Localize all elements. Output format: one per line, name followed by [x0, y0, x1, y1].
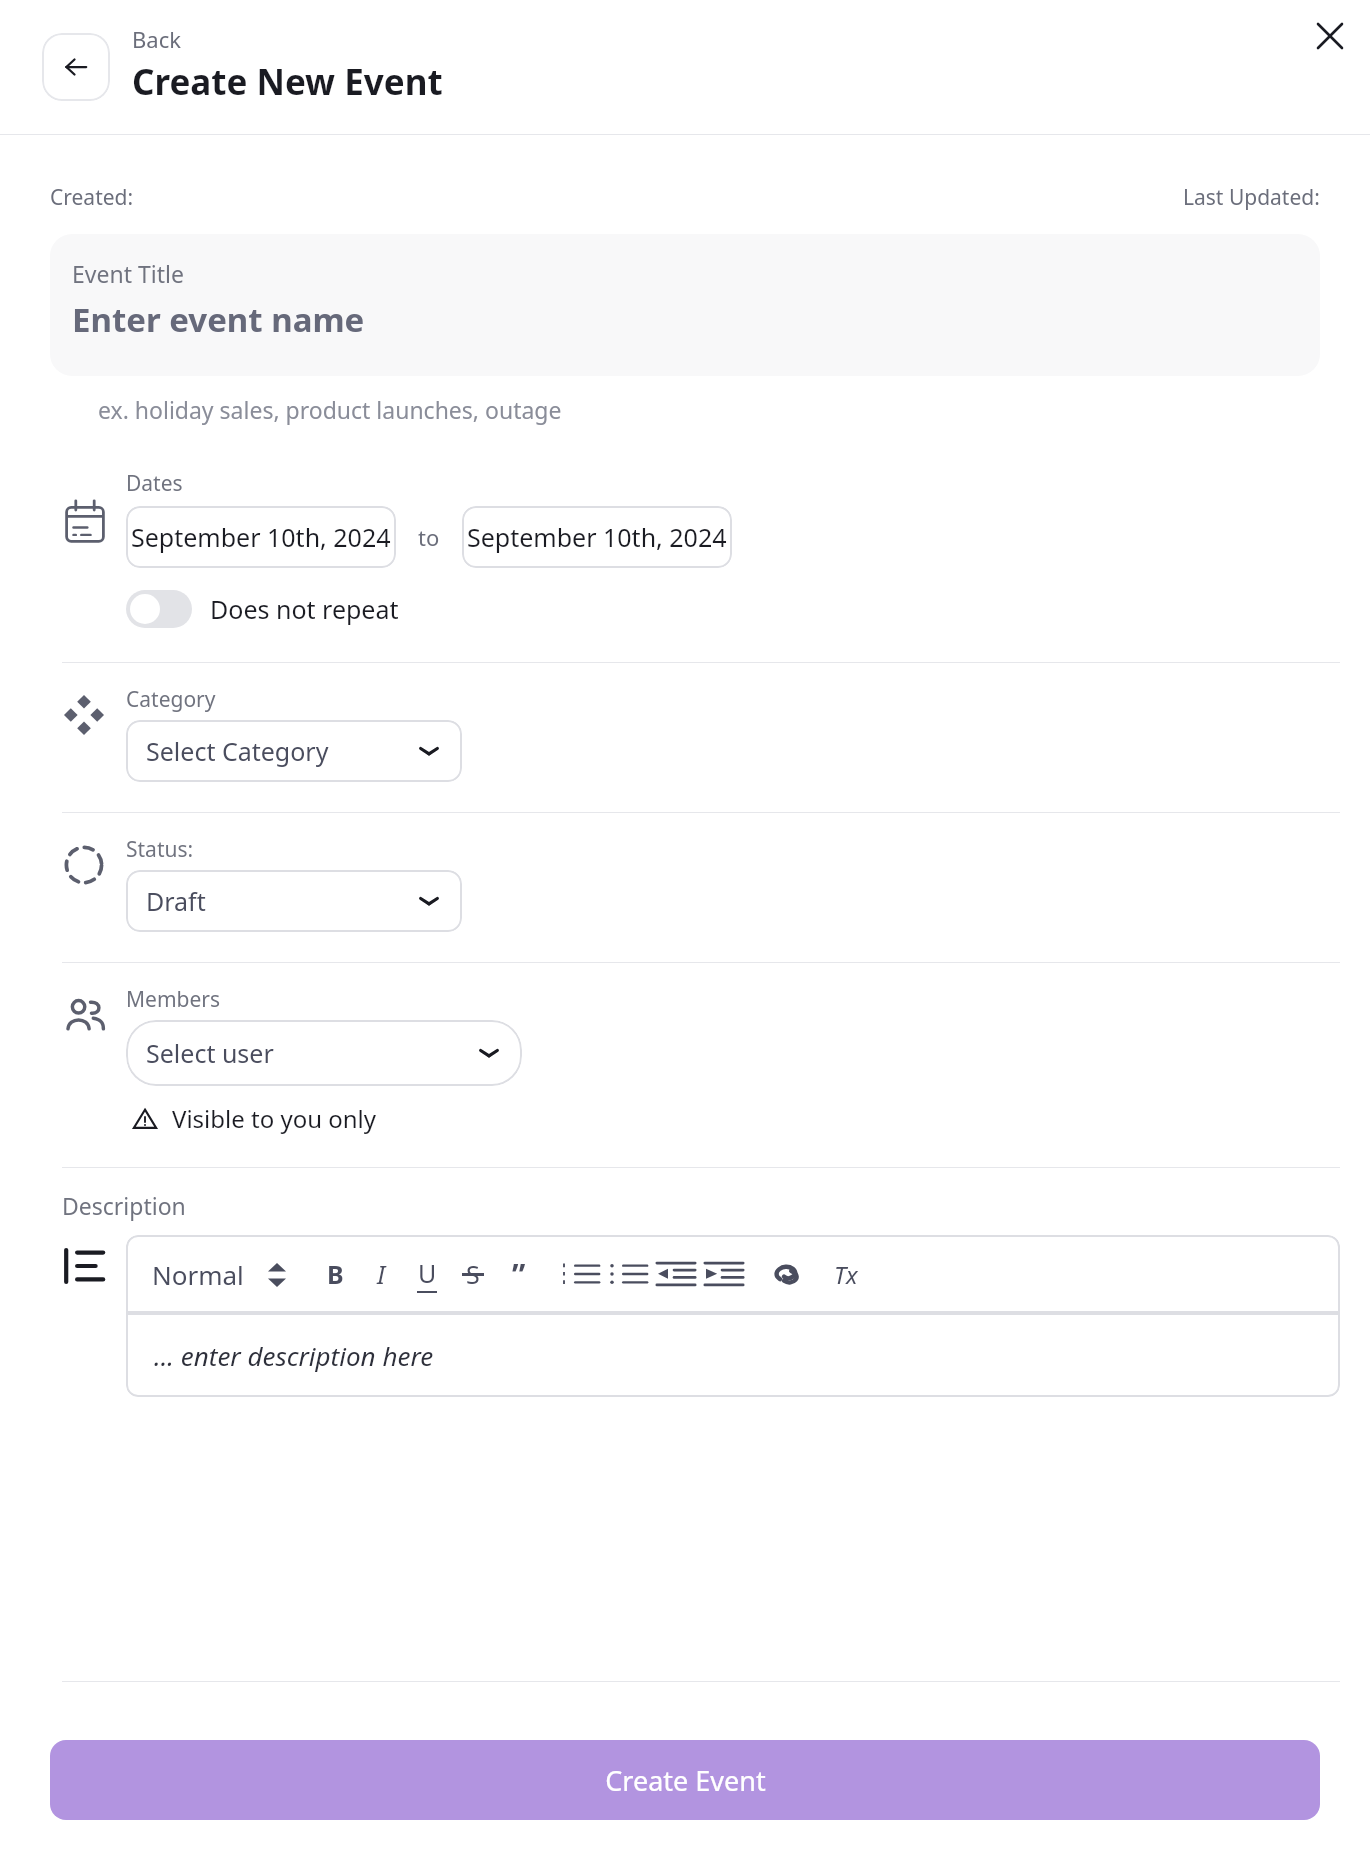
staticText: to	[418, 522, 440, 552]
other: Dates	[62, 499, 108, 545]
button[interactable]: Bold	[312, 1251, 358, 1297]
staticText: Event Title	[72, 258, 184, 289]
staticText: Normal	[152, 1257, 244, 1292]
staticText: Create Event	[605, 1762, 766, 1799]
staticText: B	[327, 1257, 344, 1291]
staticText: Members	[126, 985, 221, 1014]
staticText: Created:	[50, 183, 134, 212]
button[interactable]: Underline	[404, 1251, 450, 1297]
staticText: Visible to you only	[172, 1102, 377, 1135]
other: Category	[62, 693, 106, 737]
button[interactable]: Create Event	[50, 1740, 1320, 1820]
button[interactable]: Close	[1308, 14, 1352, 58]
button[interactable]: September 10th, 2024	[462, 506, 732, 568]
staticText: ex. holiday sales, product launches, out…	[98, 394, 562, 425]
staticText: September 10th, 2024	[467, 520, 727, 554]
button[interactable]: Numbered list	[556, 1257, 604, 1291]
button[interactable]: Clear formatting	[822, 1250, 870, 1298]
staticText: Enter event name	[72, 297, 365, 342]
staticText: Create New Event	[132, 58, 443, 106]
button[interactable]: Italic	[358, 1251, 404, 1297]
button[interactable]: Insert link	[764, 1257, 812, 1291]
button[interactable]: Draft	[126, 870, 462, 932]
staticText: Category	[126, 685, 216, 714]
staticText: Status:	[126, 835, 194, 864]
staticText: S	[466, 1257, 480, 1291]
button[interactable]: Increase indent	[700, 1257, 748, 1291]
button[interactable]: September 10th, 2024	[126, 506, 396, 568]
staticText: ”	[512, 1254, 526, 1295]
staticText: ... enter description here	[154, 1338, 434, 1373]
button[interactable]: Strikethrough	[450, 1251, 496, 1297]
button[interactable]: ... enter description here	[126, 1313, 1340, 1397]
button[interactable]: Normal	[152, 1257, 286, 1292]
button[interactable]: Event Title	[50, 234, 1320, 376]
button[interactable]: Bullet list	[604, 1257, 652, 1291]
staticText: I	[377, 1257, 386, 1291]
button[interactable]: Quote	[496, 1251, 542, 1297]
staticText: Back	[132, 24, 181, 54]
button[interactable]: Does not repeat	[126, 590, 399, 628]
button[interactable]: Back	[42, 33, 110, 101]
staticText: U	[418, 1256, 437, 1290]
staticText: Does not repeat	[210, 592, 399, 626]
staticText: September 10th, 2024	[131, 520, 391, 554]
staticText: Select Category	[146, 734, 329, 768]
staticText: Tx	[834, 1258, 858, 1291]
staticText: Last Updated:	[1183, 183, 1320, 212]
other: Description	[62, 1245, 104, 1287]
other: Members	[62, 993, 108, 1039]
staticText: Dates	[126, 469, 183, 498]
staticText: Select user	[146, 1036, 274, 1070]
button[interactable]: Select Category	[126, 720, 462, 782]
button[interactable]: Select user	[126, 1020, 522, 1086]
button[interactable]: Decrease indent	[652, 1257, 700, 1291]
staticText: Description	[62, 1190, 186, 1221]
staticText: Draft	[146, 884, 206, 918]
other: Status	[62, 843, 106, 887]
